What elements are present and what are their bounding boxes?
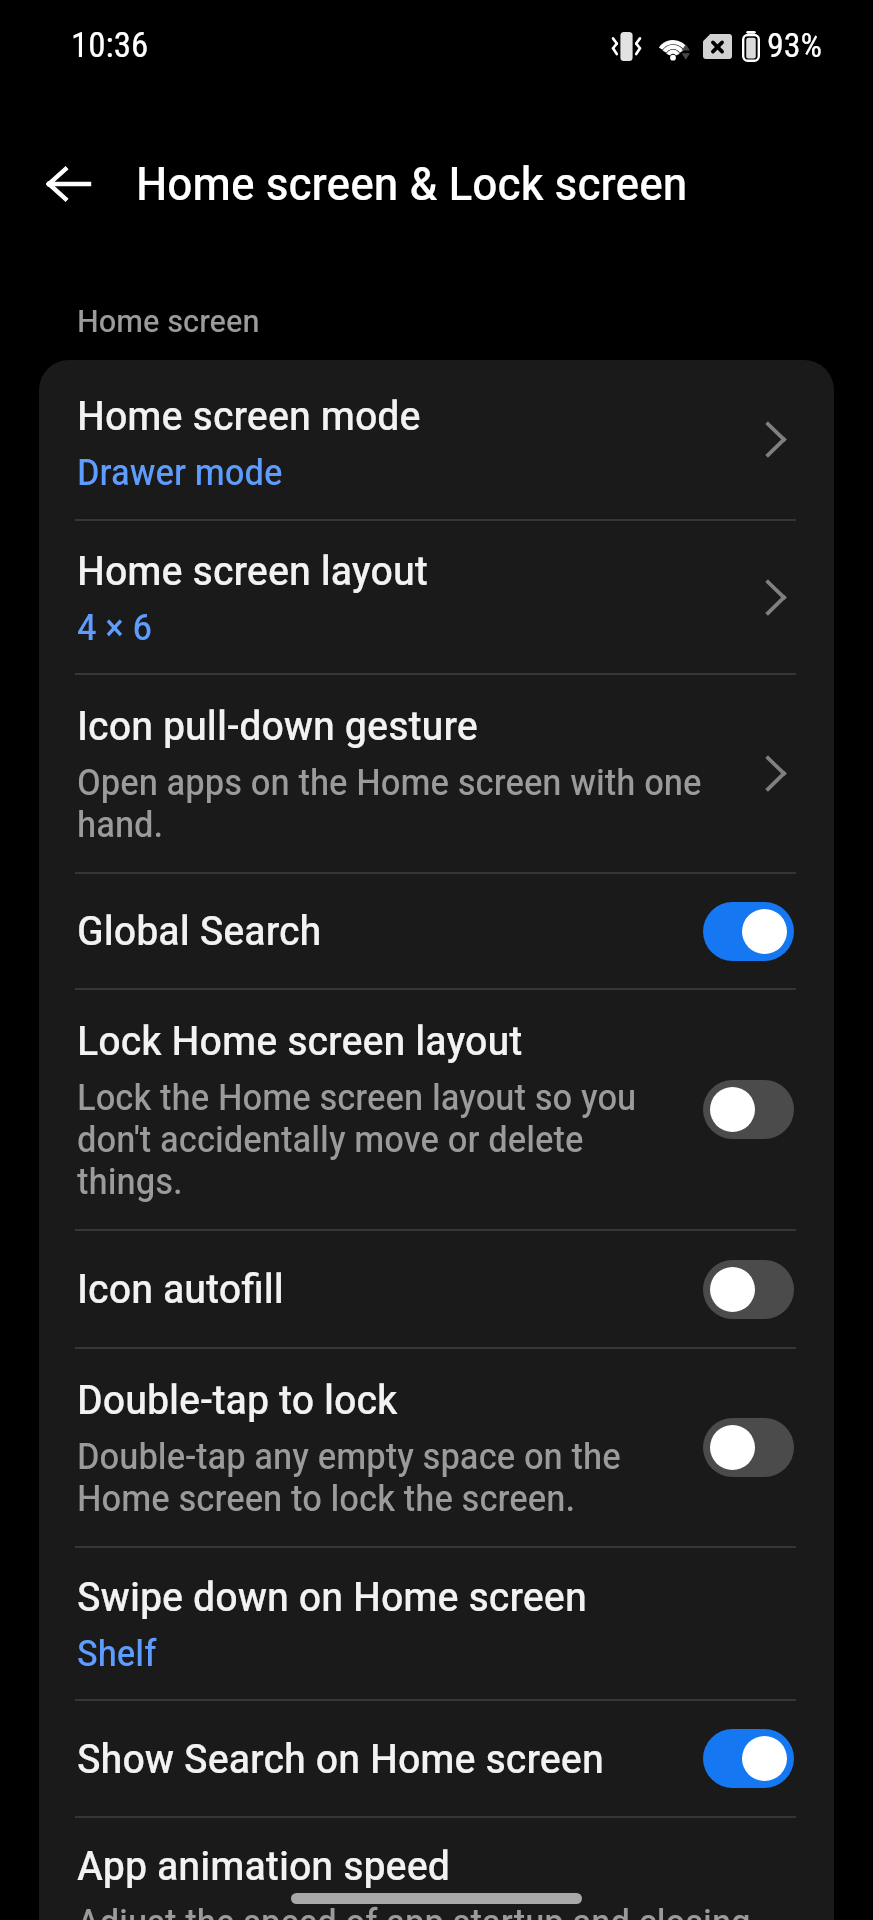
staticText: Swipe down on Home screen <box>77 1573 587 1621</box>
button[interactable]: Icon pull-down gesture <box>39 675 834 872</box>
staticText: 4 × 6 <box>77 607 153 649</box>
staticText: Shelf <box>77 1633 157 1675</box>
button[interactable]: Lock Home screen layout <box>39 990 834 1229</box>
button[interactable]: Swipe down on Home screen <box>39 1548 834 1699</box>
staticText: Double-tap to lock <box>77 1376 398 1424</box>
button[interactable]: Icon autofill <box>39 1231 834 1347</box>
button[interactable]: Toggle Lock Home screen layout <box>703 1080 794 1139</box>
button[interactable]: Show Search on Home screen <box>39 1701 834 1816</box>
button[interactable]: Toggle Icon autofill <box>703 1260 794 1319</box>
staticText: Home screen mode <box>77 392 421 440</box>
staticText: Global Search <box>77 907 322 955</box>
staticText: Adjust the speed of app startup and clos… <box>77 1902 761 1920</box>
other: Open Home screen layout <box>743 521 808 673</box>
button[interactable]: Home screen mode <box>39 360 834 519</box>
button[interactable]: Toggle Show Search on Home screen <box>703 1729 794 1788</box>
staticText: Home screen <box>77 302 260 340</box>
staticText: Drawer mode <box>77 452 283 494</box>
button[interactable]: Toggle Global Search <box>703 902 794 961</box>
staticText: 93% <box>767 25 823 65</box>
staticText: Open apps on the Home screen with one ha… <box>77 762 721 846</box>
staticText: Show Search on Home screen <box>77 1735 604 1783</box>
staticText: App animation speed <box>77 1842 450 1890</box>
staticText: Home screen layout <box>77 547 428 595</box>
staticText: Home screen & Lock screen <box>136 157 688 211</box>
staticText: Lock Home screen layout <box>77 1017 523 1065</box>
staticText: Double-tap any empty space on the Home s… <box>77 1436 681 1520</box>
staticText: Icon pull-down gesture <box>77 702 478 750</box>
button[interactable]: Global Search <box>39 874 834 988</box>
button[interactable]: Double-tap to lock <box>39 1349 834 1546</box>
other: Open Home screen mode <box>743 360 808 519</box>
button[interactable]: Toggle Double-tap to lock <box>703 1418 794 1477</box>
button[interactable]: Back <box>24 140 112 228</box>
button[interactable]: Home screen layout <box>39 521 834 673</box>
button[interactable]: App animation speed <box>39 1818 834 1920</box>
staticText: Icon autofill <box>77 1265 284 1313</box>
other: Open Icon pull-down gesture <box>743 675 808 872</box>
staticText: 10:36 <box>71 25 149 66</box>
staticText: Lock the Home screen layout so you don't… <box>77 1077 681 1203</box>
